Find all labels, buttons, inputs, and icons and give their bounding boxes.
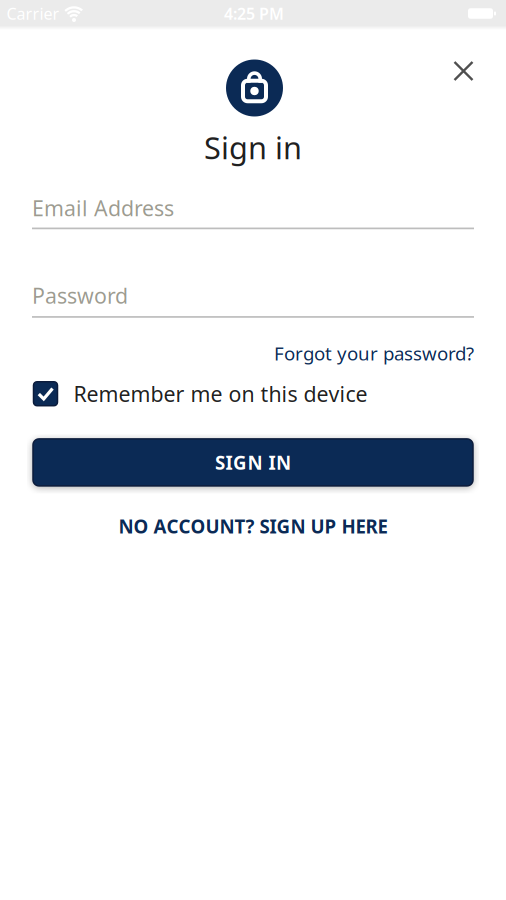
staticText: Sign in [204, 127, 302, 168]
staticText: Password [32, 281, 128, 310]
staticText: Forgot your password? [274, 341, 474, 366]
staticText: SIGN IN [215, 450, 291, 475]
staticText: Carrier [6, 3, 59, 24]
button[interactable]: Close [441, 49, 485, 93]
textField[interactable]: Password [32, 281, 474, 310]
staticText: NO ACCOUNT? SIGN UP HERE [118, 514, 387, 539]
button[interactable]: NO ACCOUNT? SIGN UP HERE [118, 514, 387, 539]
staticText: Remember me on this device [73, 380, 367, 408]
button[interactable]: Forgot your password? [274, 341, 474, 366]
textField[interactable]: Email Address [32, 194, 474, 222]
button[interactable]: SIGN IN [33, 439, 473, 486]
staticText: 4:25 PM [224, 3, 284, 24]
button[interactable]: Remember me on this device [33, 380, 367, 408]
staticText: Email Address [32, 194, 174, 222]
